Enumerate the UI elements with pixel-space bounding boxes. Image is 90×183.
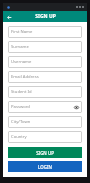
staticText: Student Id [11,89,32,95]
staticText: SIGN UP [35,13,56,20]
staticText: First Name [11,29,33,35]
button[interactable]: LOGIN [8,161,82,172]
staticText: Email Address [11,74,39,80]
staticText: City/Town [11,119,31,125]
staticText: LOGIN [38,164,52,170]
button[interactable]: Country [8,131,82,143]
button[interactable]: Student Id [8,86,82,98]
button[interactable]: First Name [8,26,82,38]
button[interactable]: Surname [8,41,82,53]
button[interactable]: Email Address [8,71,82,83]
staticText: Password [11,104,30,110]
staticText: Country [11,134,27,140]
staticText: Surname [11,44,29,50]
button[interactable]: Username [8,56,82,68]
button[interactable]: City/Town [8,116,82,128]
staticText: SIGN UP [36,150,54,156]
button[interactable]: SIGN UP [8,147,82,158]
staticText: Username [11,59,32,65]
button[interactable]: Password [8,101,82,113]
button[interactable]: Back [5,13,13,21]
button[interactable]: Show password [73,104,79,110]
